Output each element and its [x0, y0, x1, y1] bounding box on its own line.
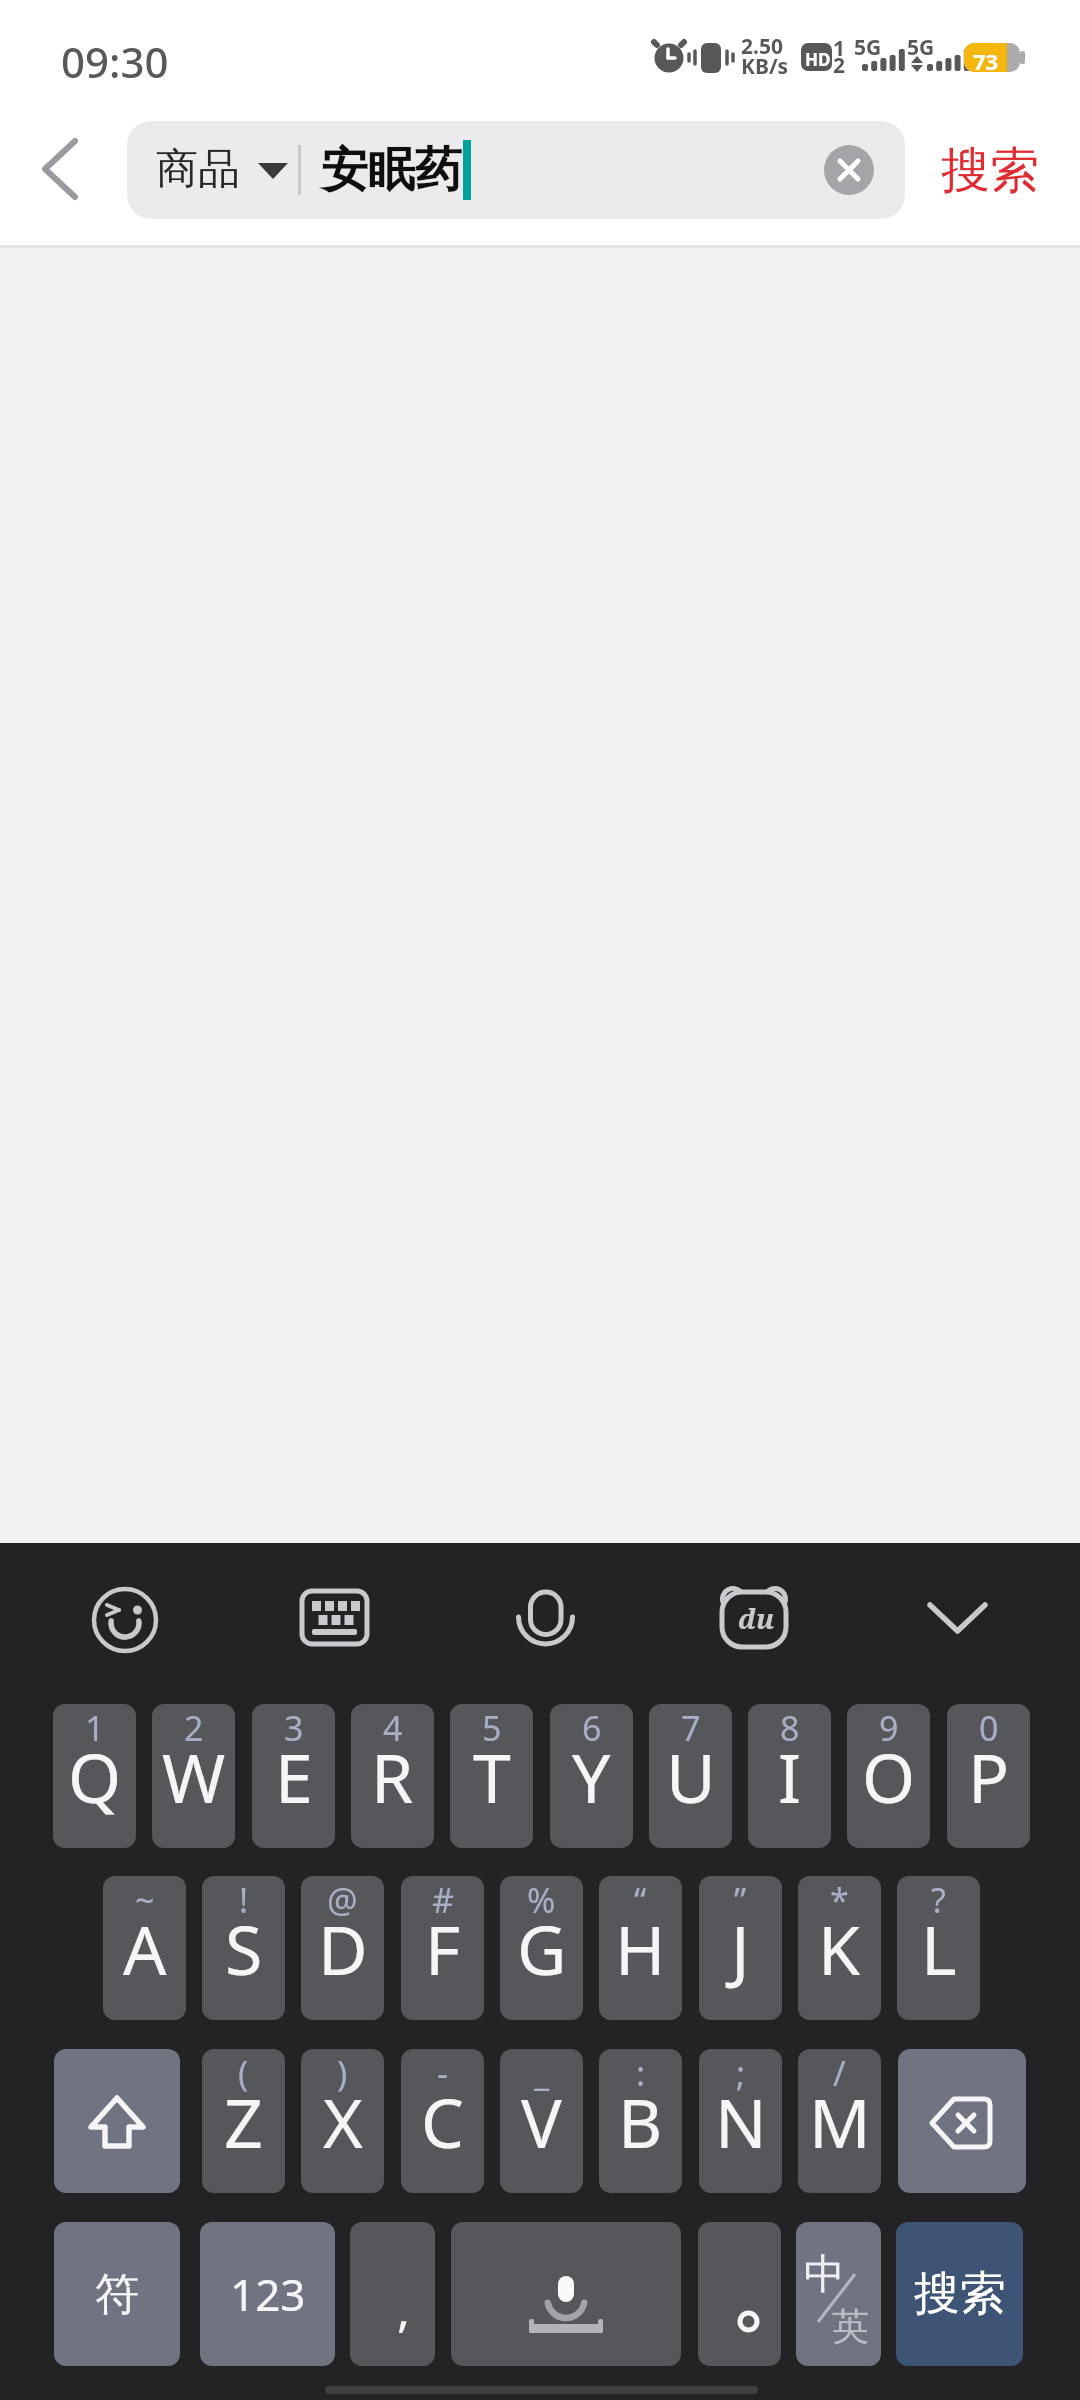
button[interactable] [298, 1588, 372, 1650]
button[interactable] [698, 2222, 781, 2366]
button[interactable]: / [798, 2049, 881, 2193]
button[interactable] [30, 130, 90, 210]
staticText: 搜索 [941, 140, 1039, 202]
staticText: 8 [780, 1705, 800, 1751]
button[interactable]: - [401, 2049, 484, 2193]
button[interactable]: 7 [649, 1704, 732, 1848]
button[interactable]: 符 [54, 2222, 180, 2366]
staticText: G [517, 1902, 567, 1995]
staticText: W [162, 1730, 226, 1823]
staticText: ; [736, 2050, 746, 2096]
button[interactable]: # [401, 1876, 484, 2020]
button[interactable]: 0 [947, 1704, 1030, 1848]
staticText: 4 [383, 1705, 403, 1751]
staticText: * [830, 1877, 849, 1923]
button[interactable]: “ [599, 1876, 682, 2020]
button[interactable]: 搜索 [896, 2222, 1023, 2366]
staticText: 1 [833, 34, 846, 63]
staticText: du [738, 1600, 775, 1637]
staticText: 3 [284, 1705, 304, 1751]
button[interactable]: , [350, 2222, 435, 2366]
staticText: , [397, 2276, 410, 2341]
button[interactable] [88, 1583, 162, 1657]
staticText: _ [534, 2050, 550, 2096]
staticText: ( [238, 2050, 249, 2096]
staticText: 1 [85, 1705, 105, 1751]
button[interactable]: 3 [252, 1704, 335, 1848]
staticText: HD [805, 48, 831, 71]
button[interactable]: _ [500, 2049, 583, 2193]
button[interactable]: 1 [53, 1704, 136, 1848]
button[interactable]: ) [301, 2049, 384, 2193]
staticText: 5G [854, 33, 882, 62]
staticText: V [521, 2075, 562, 2168]
button[interactable] [515, 1586, 575, 1650]
button[interactable]: 2 [152, 1704, 235, 1848]
staticText: ” [734, 1877, 747, 1923]
staticText: J [731, 1902, 750, 1995]
button[interactable]: 中 [796, 2222, 881, 2366]
staticText: M [809, 2075, 871, 2168]
staticText: 0 [979, 1705, 999, 1751]
button[interactable]: du [718, 1585, 792, 1653]
button[interactable]: 搜索 [920, 125, 1065, 215]
staticText: 符 [95, 2267, 139, 2322]
staticText: B [618, 2075, 663, 2168]
staticText: 9 [879, 1705, 899, 1751]
staticText: Q [68, 1730, 122, 1823]
staticText: T [473, 1730, 511, 1823]
staticText: 09:30 [61, 33, 169, 90]
staticText: 123 [230, 2264, 306, 2324]
staticText: 安眠药 [321, 141, 462, 200]
staticText: # [432, 1877, 454, 1923]
staticText: ? [931, 1877, 946, 1923]
button[interactable]: 9 [847, 1704, 930, 1848]
staticText: 2 [184, 1705, 204, 1751]
staticText: K [818, 1902, 861, 1995]
button[interactable]: % [500, 1876, 583, 2020]
button[interactable]: * [798, 1876, 881, 2020]
button[interactable] [451, 2222, 681, 2366]
button[interactable]: ! [202, 1876, 285, 2020]
staticText: A [123, 1902, 167, 1995]
staticText: “ [634, 1877, 647, 1923]
button[interactable]: 4 [351, 1704, 434, 1848]
staticText: - [437, 2050, 448, 2096]
staticText: 中 [804, 2249, 845, 2301]
button[interactable]: 5 [450, 1704, 533, 1848]
staticText: 2 [833, 51, 846, 80]
staticText: I [778, 1730, 802, 1823]
staticText: U [666, 1730, 716, 1823]
button[interactable]: ? [897, 1876, 980, 2020]
staticText: S [225, 1902, 263, 1995]
staticText: ) [337, 2050, 348, 2096]
staticText: 英 [832, 2303, 869, 2350]
staticText: 2.50 [741, 32, 783, 61]
button[interactable]: : [599, 2049, 682, 2193]
button[interactable]: @ [301, 1876, 384, 2020]
staticText: : [636, 2050, 646, 2096]
staticText: ~ [135, 1877, 155, 1923]
button[interactable]: 6 [550, 1704, 633, 1848]
staticText: R [371, 1730, 414, 1823]
staticText: L [921, 1902, 957, 1995]
button[interactable]: 123 [200, 2222, 335, 2366]
button[interactable] [824, 145, 874, 195]
button[interactable]: 商品 [127, 121, 905, 219]
button[interactable]: 8 [748, 1704, 831, 1848]
staticText: ! [239, 1877, 249, 1923]
button[interactable]: ~ [103, 1876, 186, 2020]
staticText: N [715, 2075, 767, 2168]
staticText: 搜索 [914, 2265, 1006, 2323]
button[interactable]: ( [202, 2049, 285, 2193]
staticText: / [833, 2050, 846, 2096]
button[interactable] [898, 2049, 1026, 2193]
button[interactable]: ” [699, 1876, 782, 2020]
button[interactable] [925, 1595, 990, 1645]
staticText: O [862, 1730, 916, 1823]
staticText: 5G [907, 33, 935, 62]
button[interactable]: ; [699, 2049, 782, 2193]
button[interactable] [54, 2049, 180, 2193]
staticText: Y [572, 1730, 611, 1823]
staticText: % [527, 1877, 556, 1923]
